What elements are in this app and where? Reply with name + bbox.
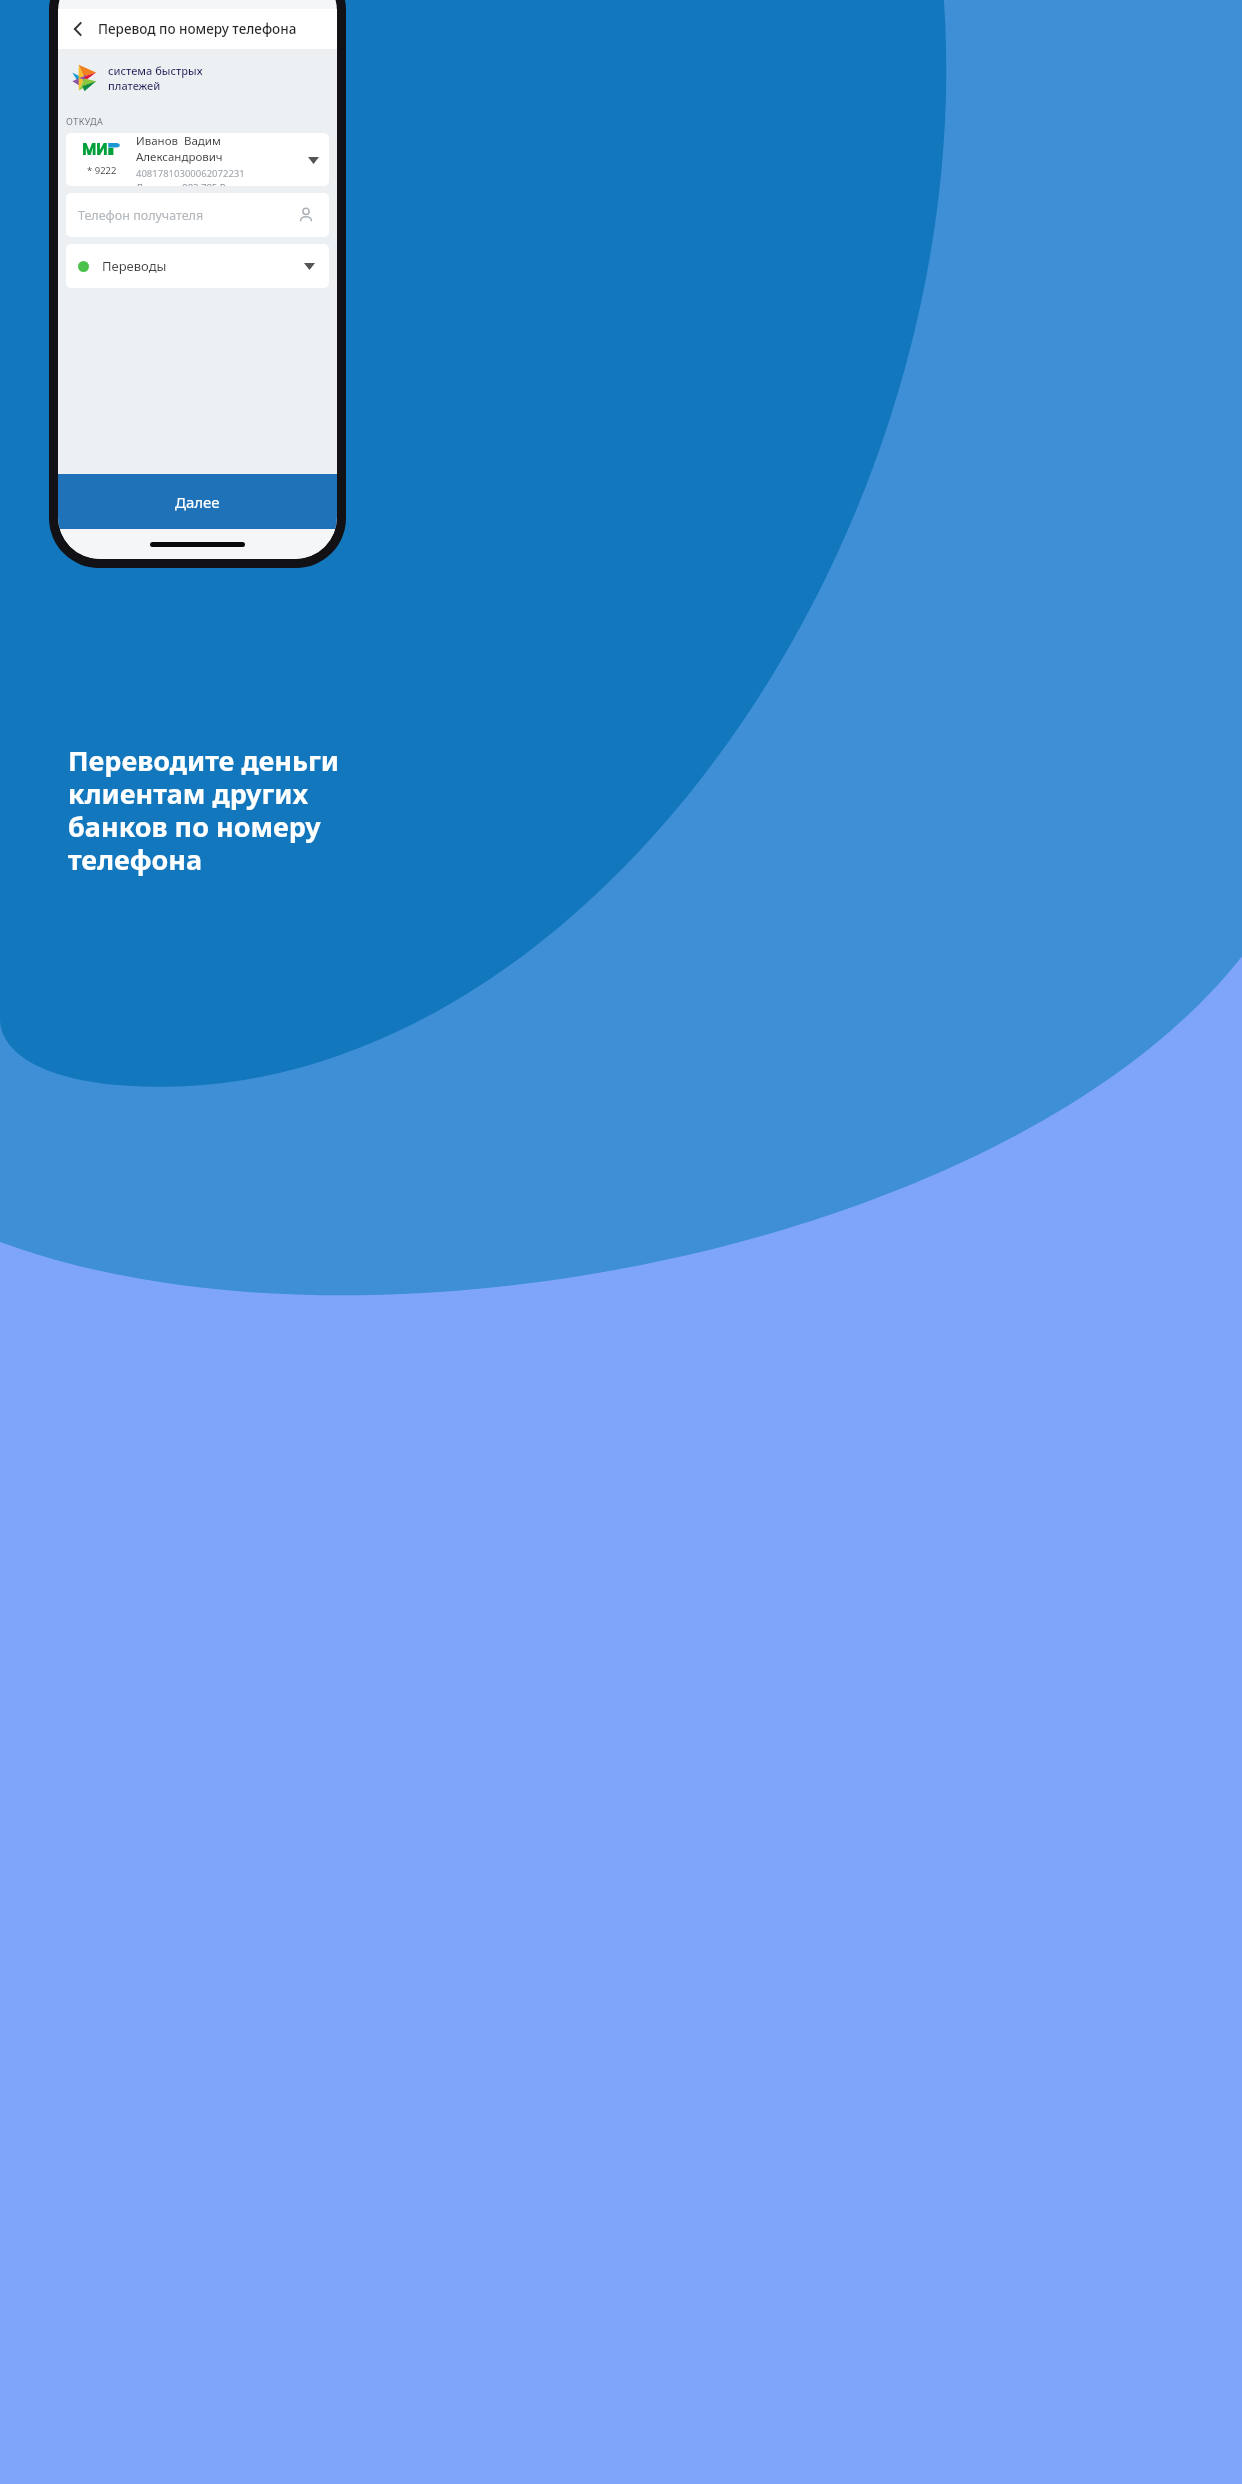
staticText: Иванов Вадим Александрович bbox=[136, 133, 305, 165]
staticText: Переводите деньги клиентам других банков… bbox=[68, 742, 408, 878]
other: Expand bbox=[305, 152, 321, 168]
staticText: система быстрых bbox=[108, 63, 203, 78]
staticText: Переводы bbox=[102, 257, 167, 275]
button[interactable]: Переводы bbox=[66, 244, 329, 288]
staticText: Доступно 983 785 ₽ bbox=[136, 181, 226, 186]
staticText: платежей bbox=[108, 78, 161, 93]
staticText: Телефон получателя bbox=[78, 207, 204, 224]
staticText: * 9222 bbox=[87, 164, 117, 177]
other: Contacts bbox=[297, 206, 315, 224]
staticText: 40817810300062072231 bbox=[136, 167, 245, 180]
staticText: Перевод по номеру телефона bbox=[98, 20, 297, 38]
staticText: Далее bbox=[175, 492, 220, 512]
button[interactable]: Далее bbox=[58, 474, 337, 529]
button[interactable]: Back bbox=[58, 9, 98, 49]
other: Expand bbox=[301, 258, 317, 274]
button[interactable]: Телефон получателя bbox=[66, 193, 329, 237]
button[interactable]: * 9222 bbox=[66, 133, 329, 186]
staticText: ОТКУДА bbox=[66, 115, 104, 127]
